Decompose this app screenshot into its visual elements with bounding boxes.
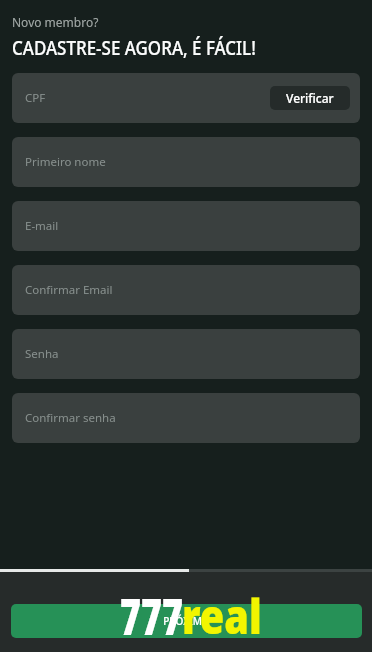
button[interactable]: Primeiro nome: [12, 137, 360, 187]
staticText: Confirmar senha: [25, 410, 116, 426]
button[interactable]: Verificar: [270, 86, 350, 110]
staticText: real: [182, 583, 262, 648]
other: Progresso do cadastro: [0, 569, 372, 572]
staticText: Verificar: [286, 90, 334, 106]
button[interactable]: Confirmar senha: [12, 393, 360, 443]
button[interactable]: PRÓXIMO: [11, 604, 362, 638]
button[interactable]: Confirmar Email: [12, 265, 360, 315]
staticText: Confirmar Email: [25, 282, 113, 298]
staticText: Novo membro?: [12, 14, 99, 30]
staticText: CPF: [25, 90, 46, 106]
button[interactable]: Senha: [12, 329, 360, 379]
staticText: PRÓXIMO: [163, 614, 210, 628]
staticText: Senha: [25, 346, 59, 362]
staticText: 777: [120, 582, 183, 649]
staticText: E-mail: [25, 218, 59, 234]
staticText: Primeiro nome: [25, 154, 106, 170]
button[interactable]: E-mail: [12, 201, 360, 251]
button[interactable]: CPF: [12, 73, 360, 123]
other: 777real: [120, 584, 217, 649]
staticText: CADASTRE-SE AGORA, É FÁCIL!: [12, 35, 256, 61]
